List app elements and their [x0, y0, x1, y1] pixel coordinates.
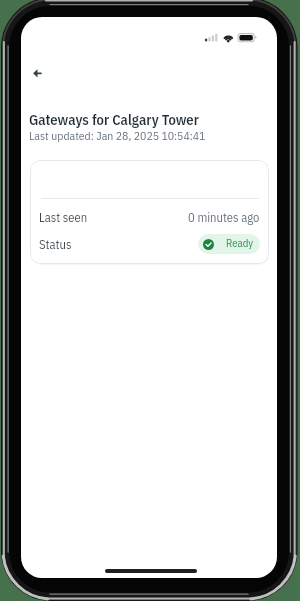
staticText: Gateways for Calgary Tower	[29, 110, 199, 129]
staticText: Ready	[226, 236, 254, 250]
staticText: 0 minutes ago	[188, 209, 260, 225]
staticText: Status	[39, 236, 72, 252]
button[interactable]: Last seen	[30, 160, 269, 264]
button[interactable]: Ready	[198, 234, 260, 254]
staticText: Last seen	[39, 209, 88, 225]
button[interactable]	[28, 64, 47, 83]
staticText: Last updated: Jan 28, 2025 10:54:41	[29, 128, 206, 143]
